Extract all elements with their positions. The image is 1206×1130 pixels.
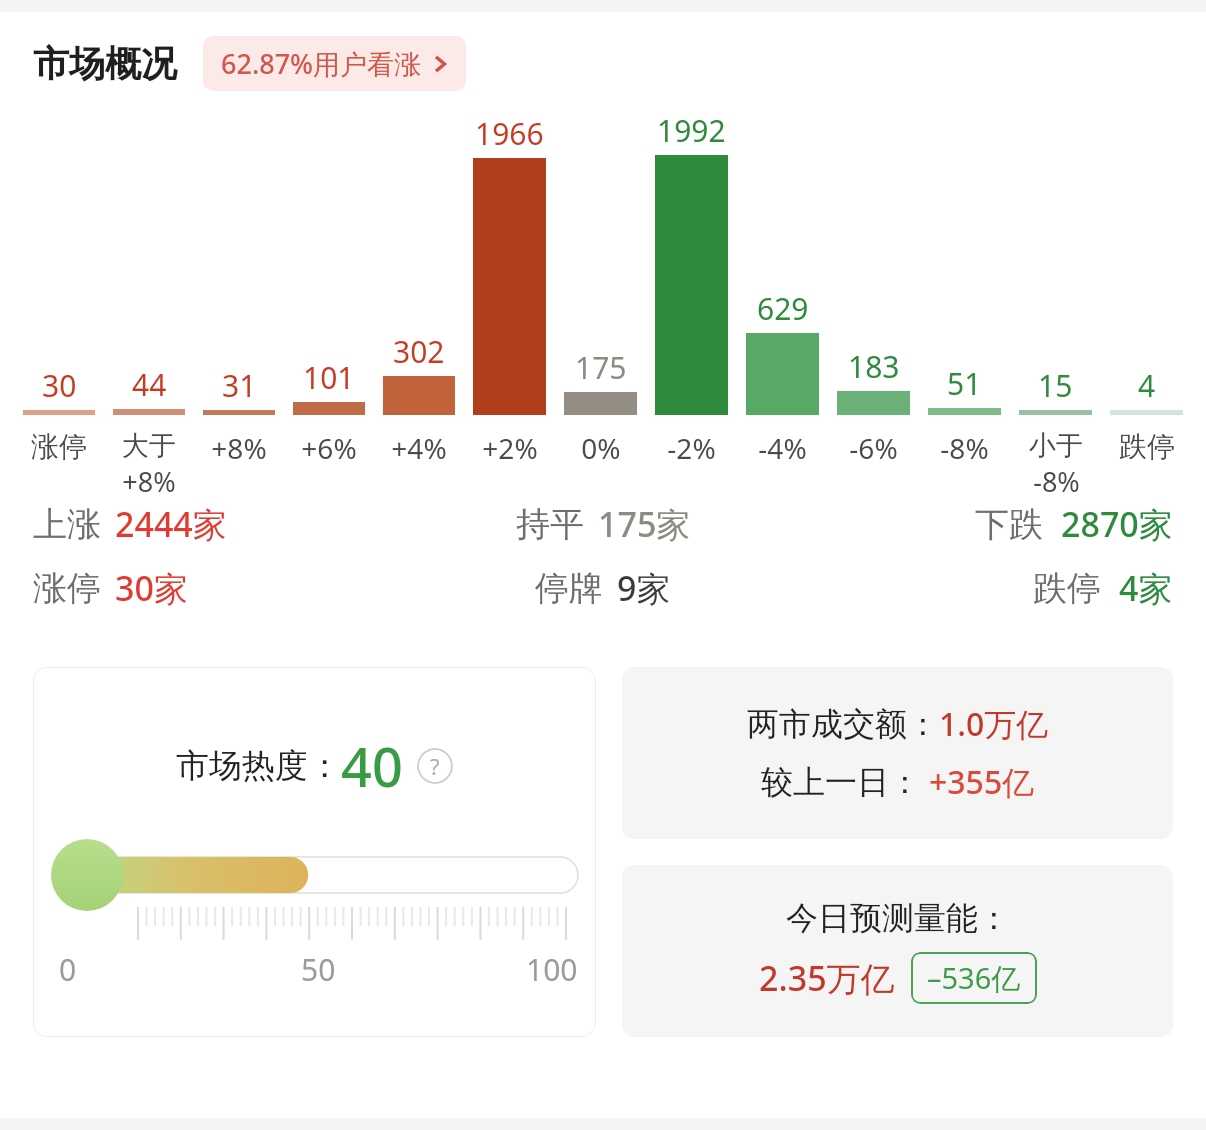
staticText: 30 bbox=[42, 365, 77, 406]
staticText: +8% bbox=[211, 429, 267, 467]
staticText: 上涨 bbox=[33, 503, 101, 546]
staticText: 跌停 bbox=[1033, 567, 1101, 610]
staticText: 1.0万亿 bbox=[939, 702, 1049, 746]
staticText: 跌停 bbox=[1119, 429, 1175, 464]
staticText: 31 bbox=[222, 365, 257, 406]
staticText: +8% bbox=[122, 463, 176, 495]
staticText: +2% bbox=[482, 429, 538, 467]
staticText: 市场热度： bbox=[176, 745, 341, 787]
staticText: 涨停 bbox=[33, 567, 101, 610]
staticText: -2% bbox=[667, 429, 716, 467]
button[interactable]: 62.87%用户看涨 bbox=[203, 36, 466, 91]
staticText: 4家 bbox=[1119, 565, 1173, 611]
staticText: ? bbox=[430, 751, 440, 781]
staticText: 今日预测量能： bbox=[786, 898, 1010, 938]
staticText: -8% bbox=[1033, 463, 1080, 495]
staticText: 302 bbox=[393, 331, 445, 372]
staticText: 2870家 bbox=[1061, 501, 1173, 547]
staticText: -4% bbox=[758, 429, 807, 467]
staticText: 30家 bbox=[115, 565, 188, 611]
staticText: 停牌 bbox=[535, 567, 603, 610]
staticText: +6% bbox=[301, 429, 357, 467]
staticText: 0 bbox=[59, 949, 77, 990]
staticText: 两市成交额： bbox=[747, 704, 939, 744]
staticText: 15 bbox=[1038, 365, 1073, 406]
button[interactable]: 市场热度： bbox=[33, 667, 596, 1037]
staticText: 40 bbox=[341, 729, 403, 803]
staticText: 183 bbox=[848, 346, 900, 387]
staticText: 101 bbox=[303, 357, 355, 398]
staticText: 小于 bbox=[1029, 429, 1083, 463]
staticText: +4% bbox=[391, 429, 447, 467]
staticText: 100 bbox=[526, 949, 578, 990]
staticText: -6% bbox=[849, 429, 898, 467]
staticText: 0% bbox=[581, 429, 621, 467]
button[interactable]: 今日预测量能： bbox=[622, 865, 1173, 1037]
staticText: 涨停 bbox=[31, 429, 87, 464]
staticText: 51 bbox=[947, 363, 982, 404]
staticText: 下跌 bbox=[975, 503, 1043, 546]
staticText: 大于 bbox=[122, 429, 176, 463]
staticText: -8% bbox=[940, 429, 989, 467]
staticText: 50 bbox=[301, 949, 336, 990]
staticText: 629 bbox=[757, 288, 809, 329]
staticText: 9家 bbox=[617, 565, 671, 611]
staticText: –536亿 bbox=[927, 958, 1021, 998]
staticText: 1966 bbox=[475, 113, 544, 154]
button[interactable]: 两市成交额： bbox=[622, 667, 1173, 839]
staticText: 4 bbox=[1138, 365, 1156, 406]
staticText: +355亿 bbox=[929, 760, 1035, 804]
staticText: 2444家 bbox=[115, 501, 227, 547]
staticText: 2.35万亿 bbox=[759, 955, 895, 1001]
staticText: 市场概况 bbox=[33, 41, 177, 86]
staticText: 175家 bbox=[598, 501, 691, 547]
staticText: 持平 bbox=[516, 503, 584, 546]
staticText: 1992 bbox=[657, 110, 726, 151]
button[interactable]: Help about market heat bbox=[417, 748, 453, 784]
staticText: 62.87%用户看涨 bbox=[221, 45, 422, 82]
staticText: 44 bbox=[132, 364, 167, 405]
staticText: 175 bbox=[575, 347, 627, 388]
staticText: 较上一日： bbox=[761, 762, 921, 802]
